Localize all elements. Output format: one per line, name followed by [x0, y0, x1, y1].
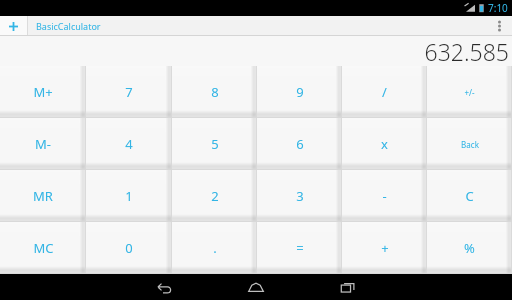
button[interactable]: . [172, 222, 257, 274]
button[interactable]: x [342, 118, 427, 170]
button[interactable]: Back [427, 118, 512, 170]
staticText: = [296, 239, 304, 257]
button[interactable]: 7 [86, 66, 172, 118]
staticText: 2 [211, 187, 219, 205]
staticText: Back [461, 139, 479, 150]
staticText: x [381, 135, 388, 153]
staticText: + [381, 239, 389, 257]
staticText: MC [33, 239, 54, 257]
staticText: MR [33, 187, 53, 205]
button[interactable]: + [342, 222, 427, 274]
button[interactable]: More options [486, 16, 512, 36]
button[interactable]: 6 [257, 118, 342, 170]
staticText: 1 [125, 187, 133, 205]
button[interactable]: BasicCalculator [36, 16, 486, 36]
button[interactable]: New tab [0, 16, 27, 36]
staticText: 5 [211, 135, 219, 153]
staticText: 7 [125, 83, 133, 101]
staticText: % [464, 239, 475, 257]
button[interactable]: 0 [86, 222, 172, 274]
button[interactable]: Back [138, 274, 190, 300]
staticText: - [382, 187, 387, 205]
button[interactable]: 5 [172, 118, 257, 170]
staticText: 3 [296, 187, 304, 205]
staticText: 632.585 [424, 36, 509, 66]
button[interactable]: MC [0, 222, 86, 274]
button[interactable]: C [427, 170, 512, 222]
staticText: M- [35, 135, 51, 153]
staticText: 8 [211, 83, 219, 101]
staticText: 0 [125, 239, 133, 257]
button[interactable]: 8 [172, 66, 257, 118]
button[interactable]: % [427, 222, 512, 274]
staticText: 9 [296, 83, 304, 101]
button[interactable]: M+ [0, 66, 86, 118]
button[interactable]: 4 [86, 118, 172, 170]
button[interactable]: - [342, 170, 427, 222]
button[interactable]: = [257, 222, 342, 274]
button[interactable]: M- [0, 118, 86, 170]
button[interactable]: 2 [172, 170, 257, 222]
button[interactable]: Recent apps [322, 274, 374, 300]
staticText: BasicCalculator [36, 20, 101, 32]
staticText: 7:10 [488, 1, 508, 15]
staticText: +/- [464, 87, 475, 98]
staticText: M+ [33, 83, 53, 101]
staticText: 6 [296, 135, 304, 153]
staticText: C [465, 187, 474, 205]
staticText: / [382, 83, 387, 101]
button[interactable]: 1 [86, 170, 172, 222]
button[interactable]: MR [0, 170, 86, 222]
button[interactable]: 3 [257, 170, 342, 222]
button[interactable]: / [342, 66, 427, 118]
button[interactable]: +/- [427, 66, 512, 118]
staticText: 4 [125, 135, 133, 153]
button[interactable]: 9 [257, 66, 342, 118]
button[interactable]: Home [230, 274, 282, 300]
staticText: . [213, 239, 217, 257]
